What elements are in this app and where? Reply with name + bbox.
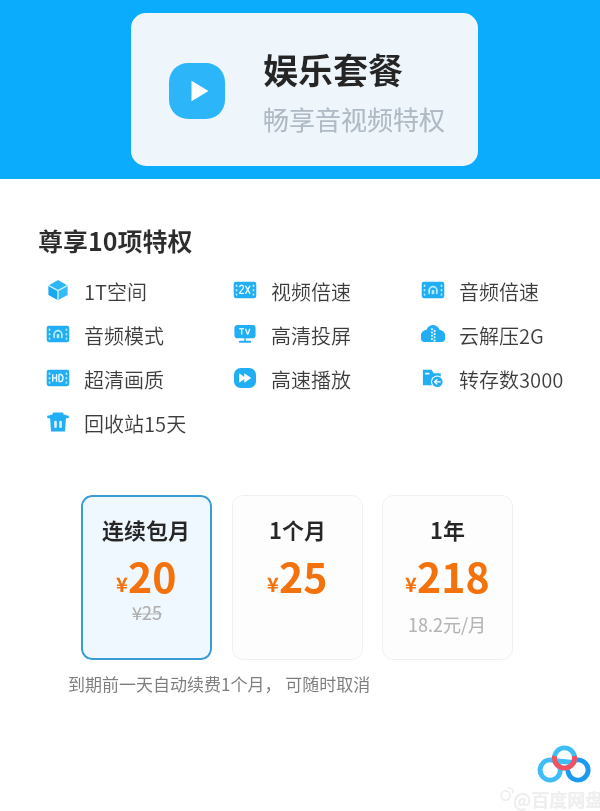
- staticText: 高速播放: [271, 365, 351, 391]
- button[interactable]: 音频模式: [46, 321, 206, 347]
- staticText: 1T空间: [84, 277, 148, 303]
- staticText: ¥: [267, 569, 279, 598]
- staticText: 尊享10项特权: [38, 222, 193, 258]
- button[interactable]: 视频倍速: [233, 277, 393, 303]
- button[interactable]: 高速播放: [233, 365, 393, 391]
- staticText: 18.2元/月: [408, 611, 487, 637]
- staticText: 连续包月: [102, 513, 191, 545]
- button[interactable]: 回收站15天: [46, 409, 206, 435]
- button[interactable]: 云解压2G: [421, 321, 581, 347]
- button[interactable]: 娱乐套餐: [131, 13, 478, 166]
- staticText: 音频模式: [84, 321, 164, 347]
- button[interactable]: 超清画质: [46, 365, 206, 391]
- staticText: 高清投屏: [271, 321, 351, 347]
- staticText: 超清画质: [84, 365, 164, 391]
- button[interactable]: 连续包月: [81, 495, 212, 660]
- staticText: 218: [417, 545, 490, 604]
- staticText: 娱乐套餐: [263, 43, 404, 94]
- staticText: 20: [128, 545, 177, 604]
- staticText: 畅享音视频特权: [263, 100, 446, 138]
- button[interactable]: 1个月: [232, 495, 363, 660]
- staticText: 视频倍速: [271, 277, 351, 303]
- staticText: 到期前一天自动续费1个月， 可随时取消: [68, 671, 371, 696]
- staticText: 云解压2G: [459, 321, 544, 347]
- staticText: 回收站15天: [84, 409, 187, 435]
- staticText: ¥: [116, 569, 128, 598]
- staticText: ¥25: [132, 599, 162, 625]
- staticText: 转存数3000: [459, 365, 564, 391]
- staticText: 音频倍速: [459, 277, 539, 303]
- staticText: 25: [279, 545, 328, 604]
- button[interactable]: 1T空间: [46, 277, 206, 303]
- button[interactable]: 高清投屏: [233, 321, 393, 347]
- button[interactable]: 1年: [382, 495, 513, 660]
- other: Baidu Netdisk: [538, 744, 590, 786]
- staticText: 1年: [430, 513, 465, 545]
- button[interactable]: 音频倍速: [421, 277, 581, 303]
- staticText: @百度网盘: [513, 786, 600, 811]
- staticText: ¥: [405, 569, 417, 598]
- button[interactable]: 转存数3000: [421, 365, 581, 391]
- staticText: 1个月: [269, 513, 326, 545]
